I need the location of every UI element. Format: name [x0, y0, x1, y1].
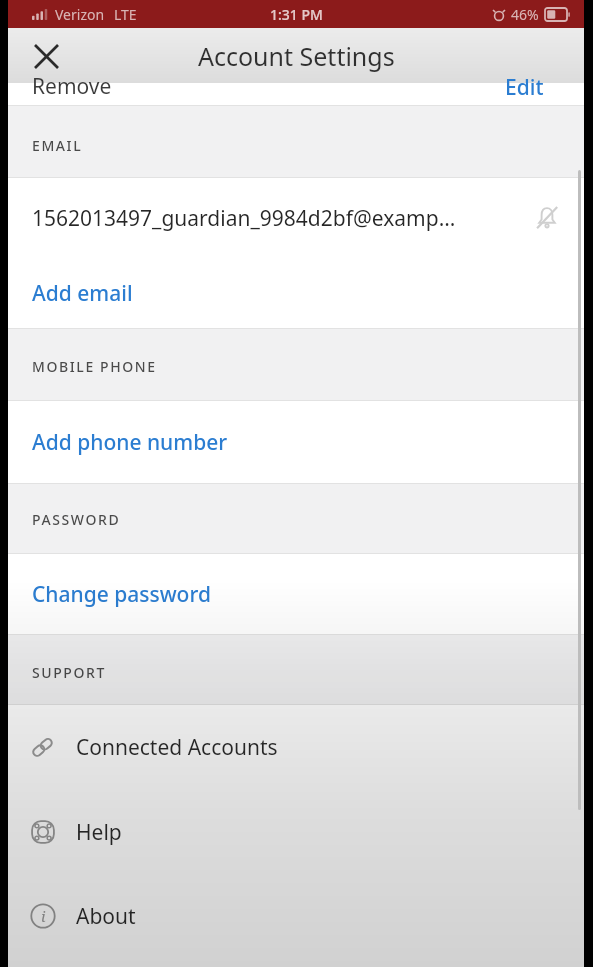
staticText: Verizon — [55, 5, 105, 24]
staticText: Add email — [32, 279, 133, 308]
button[interactable]: Help — [8, 790, 584, 874]
staticText: About — [76, 902, 136, 931]
button[interactable]: Connected Accounts — [8, 705, 584, 790]
staticText: Account Settings — [198, 39, 395, 73]
staticText: 46% — [511, 5, 539, 24]
staticText: 1562013497_guardian_9984d2bf@examp… — [32, 204, 522, 233]
staticText: Edit — [505, 73, 544, 95]
staticText: Connected Accounts — [76, 733, 278, 762]
button[interactable]: Close — [22, 32, 70, 80]
other: Notifications off — [530, 201, 564, 235]
button[interactable]: 1562013497_guardian_9984d2bf@examp… — [8, 178, 584, 258]
button[interactable]: Change password — [8, 554, 584, 634]
staticText: 1:31 PM — [270, 5, 323, 24]
staticText: Help — [76, 818, 122, 847]
staticText: Change password — [32, 580, 211, 609]
button[interactable]: Add phone number — [8, 401, 584, 483]
staticText: PASSWORD — [32, 510, 121, 529]
staticText: LTE — [114, 5, 137, 24]
staticText: SUPPORT — [32, 663, 107, 682]
button[interactable]: i — [8, 874, 584, 958]
staticText: MOBILE PHONE — [32, 357, 157, 376]
button[interactable]: Add email — [8, 258, 584, 328]
staticText: Remove — [32, 72, 112, 94]
staticText: Add phone number — [32, 428, 228, 457]
staticText: EMAIL — [32, 136, 83, 155]
staticText: i — [41, 906, 46, 926]
